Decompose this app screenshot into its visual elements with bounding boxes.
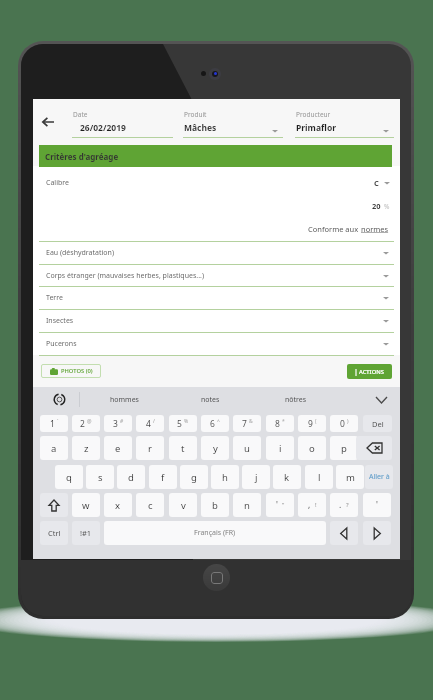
button[interactable]: Français (FR) (104, 521, 326, 545)
button[interactable]: Emoji (38, 387, 80, 412)
button[interactable]: v (169, 493, 197, 517)
button[interactable]: hommes (81, 387, 167, 412)
button[interactable]: Expand suggestions (363, 387, 400, 412)
staticText: q (66, 471, 72, 484)
button[interactable]: Terre (39, 286, 394, 309)
staticText: hommes (110, 395, 139, 405)
button[interactable]: 9 (298, 415, 326, 432)
button[interactable]: 7 (233, 415, 261, 432)
staticText: / (153, 418, 155, 425)
staticText: Corps étranger (mauvaises herbes, plasti… (46, 271, 204, 281)
button[interactable]: Insectes (39, 309, 394, 332)
button[interactable]: k (273, 465, 301, 489)
button[interactable]: i (266, 436, 294, 460)
staticText: h (222, 471, 228, 484)
button[interactable]: c (136, 493, 164, 517)
button[interactable]: t (169, 436, 197, 460)
button[interactable]: Calibre (39, 172, 394, 194)
button[interactable]: h (211, 465, 239, 489)
staticText: y (213, 442, 218, 455)
staticText: k (284, 471, 290, 484)
staticText: 4 (146, 418, 151, 430)
button[interactable]: ' (266, 493, 294, 517)
staticText: Pucerons (46, 339, 77, 349)
button[interactable]: n (233, 493, 261, 517)
button[interactable]: o (298, 436, 326, 460)
button[interactable]: Del (363, 415, 392, 432)
button[interactable]: 0 (330, 415, 358, 432)
button[interactable] (183, 107, 283, 137)
staticText: ACTIONS (359, 368, 384, 376)
staticText: Aller à (369, 472, 390, 482)
button[interactable]: Shift (40, 493, 68, 517)
button[interactable]: 5 (169, 415, 197, 432)
button[interactable]: 6 (201, 415, 229, 432)
button[interactable]: Eau (déshydratation) (39, 241, 394, 264)
button[interactable]: . (330, 493, 358, 517)
button[interactable]: w (72, 493, 100, 517)
button[interactable]: Move right (363, 521, 391, 545)
button[interactable]: Back (38, 112, 58, 132)
button[interactable]: !#1 (72, 521, 100, 545)
button[interactable]: ' (363, 493, 391, 517)
button[interactable]: y (201, 436, 229, 460)
button[interactable]: m (336, 465, 364, 489)
button[interactable]: 8 (266, 415, 294, 432)
staticText: Conforme aux (308, 224, 361, 234)
button[interactable]: z (72, 436, 100, 460)
staticText: , (308, 499, 311, 511)
button[interactable]: f (149, 465, 177, 489)
staticText: Mâches (184, 122, 217, 134)
staticText: 7 (242, 418, 247, 430)
button[interactable]: Move left (330, 521, 358, 545)
staticText: m (346, 471, 355, 484)
staticText: ! (315, 501, 317, 509)
staticText: Producteur (296, 110, 331, 119)
staticText: o (309, 442, 315, 455)
staticText: % (384, 202, 390, 211)
button[interactable]: b (201, 493, 229, 517)
button[interactable]: Corps étranger (mauvaises herbes, plasti… (39, 264, 394, 287)
button[interactable]: l (305, 465, 333, 489)
button[interactable]: x (104, 493, 132, 517)
button[interactable]: 2 (72, 415, 100, 432)
button[interactable]: Critères d'agréage (39, 145, 392, 167)
button[interactable]: a (40, 436, 68, 460)
staticText: c (148, 499, 153, 512)
staticText: & (249, 418, 253, 425)
button[interactable]: Ctrl (40, 521, 68, 545)
button[interactable]: 1 (40, 415, 68, 432)
button[interactable]: notes (167, 387, 253, 412)
staticText: z (84, 442, 89, 455)
button[interactable]: r (136, 436, 164, 460)
button[interactable]: g (180, 465, 208, 489)
button[interactable]: 3 (104, 415, 132, 432)
button[interactable]: 20 (39, 195, 394, 217)
button[interactable]: d (117, 465, 145, 489)
button[interactable]: u (233, 436, 261, 460)
button[interactable]: ACTIONS (347, 364, 392, 379)
staticText: notes (201, 395, 220, 405)
button[interactable] (295, 107, 394, 137)
button[interactable]: s (86, 465, 114, 489)
button[interactable]: nôtres (253, 387, 339, 412)
button[interactable]: , (298, 493, 326, 517)
button[interactable]: j (242, 465, 270, 489)
button[interactable]: Home (203, 564, 230, 591)
staticText: Français (FR) (194, 528, 236, 538)
button[interactable]: Backspace (356, 436, 392, 460)
button[interactable]: q (55, 465, 83, 489)
button[interactable]: Aller à (365, 465, 393, 489)
button[interactable]: 4 (136, 415, 164, 432)
button[interactable]: e (104, 436, 132, 460)
staticText: ' (376, 499, 378, 511)
button[interactable]: p (330, 436, 358, 460)
staticText: * (282, 418, 285, 425)
staticText: . (339, 499, 342, 511)
button[interactable] (72, 107, 173, 137)
button[interactable]: Conforme aux (39, 218, 394, 240)
button[interactable]: Pucerons (39, 332, 394, 355)
button[interactable]: PHOTOS (0) (41, 364, 101, 378)
staticText: 8 (275, 418, 280, 430)
staticText: Insectes (46, 316, 74, 326)
